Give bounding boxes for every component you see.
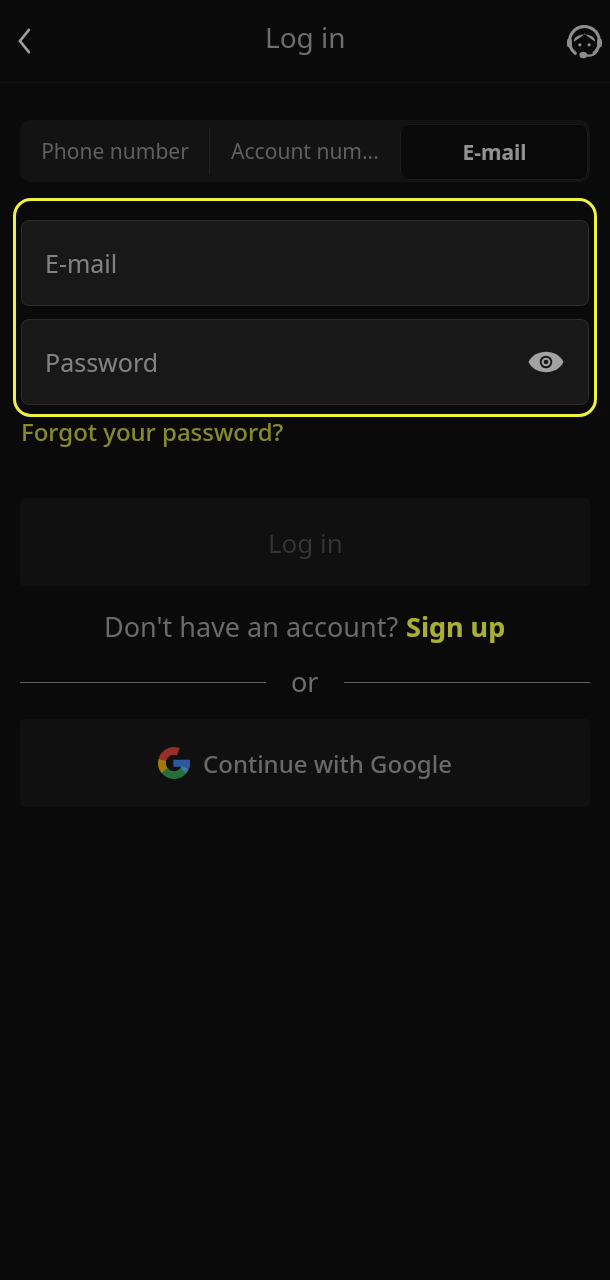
staticText: Password <box>45 345 159 379</box>
button[interactable]: Password <box>21 319 589 405</box>
staticText: Log in <box>268 525 343 560</box>
button[interactable]: Back <box>1 17 49 65</box>
staticText: Log in <box>265 18 346 56</box>
staticText: Continue with Google <box>203 747 452 780</box>
button[interactable]: E-mail <box>21 220 589 306</box>
button[interactable]: E-mail <box>400 124 588 180</box>
button[interactable]: Show password <box>524 340 568 384</box>
button[interactable]: Sign up <box>406 608 506 645</box>
staticText: or <box>291 663 319 695</box>
button[interactable]: Customer support <box>560 17 608 65</box>
button[interactable]: Account num... <box>210 120 400 182</box>
button[interactable]: Forgot your password? <box>20 415 285 448</box>
staticText: E-mail <box>45 246 118 280</box>
staticText: Don't have an account? <box>104 608 406 645</box>
button[interactable]: Phone number <box>20 120 209 182</box>
staticText: E-mail <box>462 138 527 167</box>
staticText: Phone number <box>41 137 189 166</box>
button[interactable]: Continue with Google <box>20 719 590 807</box>
staticText: Account num... <box>231 137 379 166</box>
